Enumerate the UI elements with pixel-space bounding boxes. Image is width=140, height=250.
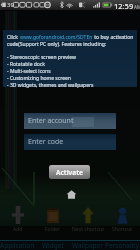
staticText: - Rotatable dock [7,61,45,68]
button[interactable]: Activate [49,165,90,179]
staticText: Shortcut [112,226,133,233]
staticText: - Multi-select icons [7,68,51,75]
staticText: Wallpaper [72,241,103,250]
staticText: 12:59 [114,1,134,11]
staticText: Application [0,241,35,250]
button[interactable]: Folder [35,206,70,233]
button[interactable]: Personality [105,241,140,250]
button[interactable]: Application [0,241,35,250]
staticText: - Customizing home screen [7,75,71,82]
button[interactable]: Enter account [24,113,116,129]
staticText: AM [134,4,140,10]
staticText: 39 [7,1,14,9]
button[interactable]: Widget [35,241,70,250]
staticText: - 3D widgets, themes and wallpapers [7,82,94,89]
staticText: Activate [56,168,83,177]
button[interactable]: Next shortcut [70,206,105,233]
staticText: Add [13,226,23,233]
staticText: Widget [42,241,64,250]
staticText: Personality [105,241,140,250]
button[interactable]: Shortcut [105,206,140,233]
staticText: - Stereoscopic screen preview [7,54,77,61]
button[interactable]: Enter code [24,134,116,150]
button[interactable]: Home [66,189,77,200]
staticText: code(Support PC only). Features includin… [7,41,107,48]
button[interactable]: Wallpaper [70,241,105,250]
button[interactable]: Add [0,206,35,233]
staticText: Next shortcut [72,226,104,233]
staticText: Click [7,34,20,41]
staticText: to buy activation [93,34,134,41]
staticText: Enter account [28,116,74,126]
staticText: Folder [45,226,60,233]
staticText: www.goforandroid.com/SDTEn [20,34,93,41]
staticText: Enter code [28,137,64,147]
